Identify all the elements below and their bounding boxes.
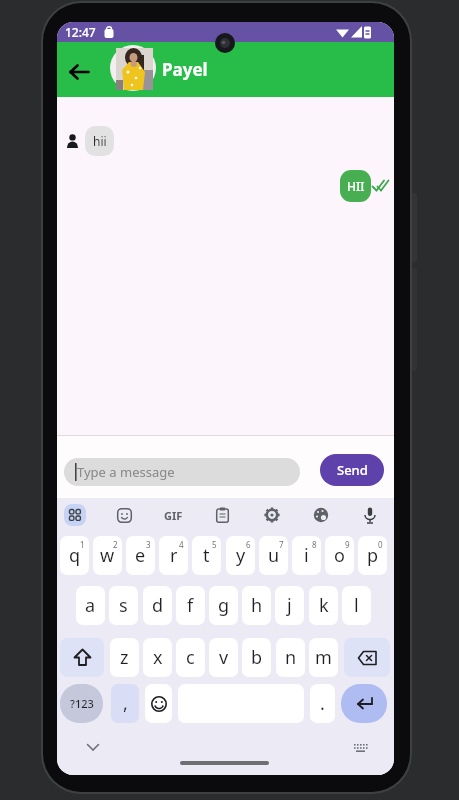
button[interactable]: u (259, 536, 288, 575)
button[interactable]: w (93, 536, 122, 575)
button[interactable]: y (226, 536, 255, 575)
staticText: j (287, 593, 292, 618)
button[interactable] (145, 684, 172, 723)
staticText: x (153, 645, 163, 670)
button[interactable]: HII (340, 170, 371, 202)
button[interactable]: r (159, 536, 188, 575)
staticText: Payel (162, 58, 208, 81)
staticText: 0 (378, 539, 383, 550)
button[interactable]: e (126, 536, 155, 575)
button[interactable] (359, 504, 381, 526)
button[interactable] (81, 738, 105, 756)
staticText: hii (93, 133, 107, 149)
staticText: 3 (146, 539, 151, 550)
button[interactable] (60, 638, 104, 677)
staticText: GIF (164, 508, 183, 523)
button[interactable]: o (325, 536, 354, 575)
staticText: ?123 (70, 696, 94, 711)
staticText: l (354, 593, 359, 618)
button[interactable]: hii (85, 126, 114, 156)
button[interactable]: t (192, 536, 221, 575)
button[interactable]: l (342, 586, 371, 625)
staticText: r (170, 543, 178, 568)
staticText: c (186, 645, 195, 670)
staticText: o (334, 543, 345, 568)
staticText: q (69, 543, 81, 568)
button[interactable]: d (143, 586, 172, 625)
staticText: z (120, 645, 129, 670)
button[interactable]: z (110, 638, 139, 677)
button[interactable] (261, 504, 283, 526)
staticText: g (218, 593, 230, 618)
button[interactable]: Send (320, 454, 384, 486)
button[interactable]: GIF (160, 504, 186, 526)
staticText: Type a message (77, 463, 175, 481)
staticText: d (152, 593, 164, 618)
button[interactable]: j (275, 586, 304, 625)
staticText: i (304, 543, 309, 568)
button[interactable] (310, 504, 332, 526)
button[interactable] (211, 504, 233, 526)
staticText: s (119, 593, 128, 618)
staticText: y (236, 543, 246, 568)
staticText: b (251, 645, 263, 670)
staticText: 7 (279, 539, 284, 550)
button[interactable]: h (242, 586, 271, 625)
button[interactable] (341, 684, 387, 723)
staticText: 1 (80, 539, 85, 550)
button[interactable]: f (176, 586, 205, 625)
button[interactable] (63, 60, 95, 84)
staticText: 5 (212, 539, 217, 550)
staticText: , (123, 691, 128, 716)
button[interactable]: k (309, 586, 338, 625)
button[interactable]: ?123 (60, 684, 103, 723)
staticText: 9 (345, 539, 350, 550)
staticText: v (219, 645, 229, 670)
staticText: h (251, 593, 263, 618)
button[interactable]: v (209, 638, 238, 677)
button[interactable]: x (143, 638, 172, 677)
button[interactable]: n (276, 638, 305, 677)
staticText: a (85, 593, 96, 618)
staticText: 4 (179, 539, 184, 550)
staticText: p (367, 543, 379, 568)
staticText: e (135, 543, 146, 568)
staticText: f (187, 593, 194, 618)
button[interactable]: m (309, 638, 338, 677)
button[interactable]: g (209, 586, 238, 625)
staticText: 12:47 (65, 24, 96, 40)
button[interactable]: . (310, 684, 335, 723)
button[interactable]: s (109, 586, 138, 625)
button[interactable] (64, 504, 86, 526)
button[interactable]: Type a message (64, 458, 300, 486)
staticText: t (203, 543, 210, 568)
button[interactable]: a (76, 586, 105, 625)
staticText: n (285, 645, 297, 670)
staticText: u (268, 543, 280, 568)
staticText: k (319, 593, 329, 618)
staticText: 2 (113, 539, 118, 550)
staticText: 8 (312, 539, 317, 550)
button[interactable] (344, 638, 390, 677)
button[interactable]: c (176, 638, 205, 677)
button[interactable] (113, 504, 135, 526)
button[interactable]: b (242, 638, 271, 677)
button[interactable]: p (358, 536, 387, 575)
button[interactable]: q (60, 536, 89, 575)
button[interactable]: i (292, 536, 321, 575)
staticText: Send (337, 461, 368, 479)
button[interactable]: , (111, 684, 139, 723)
staticText: 6 (246, 539, 251, 550)
staticText: HII (347, 178, 365, 194)
staticText: m (315, 645, 332, 670)
staticText: w (100, 543, 115, 568)
staticText: . (320, 691, 325, 716)
